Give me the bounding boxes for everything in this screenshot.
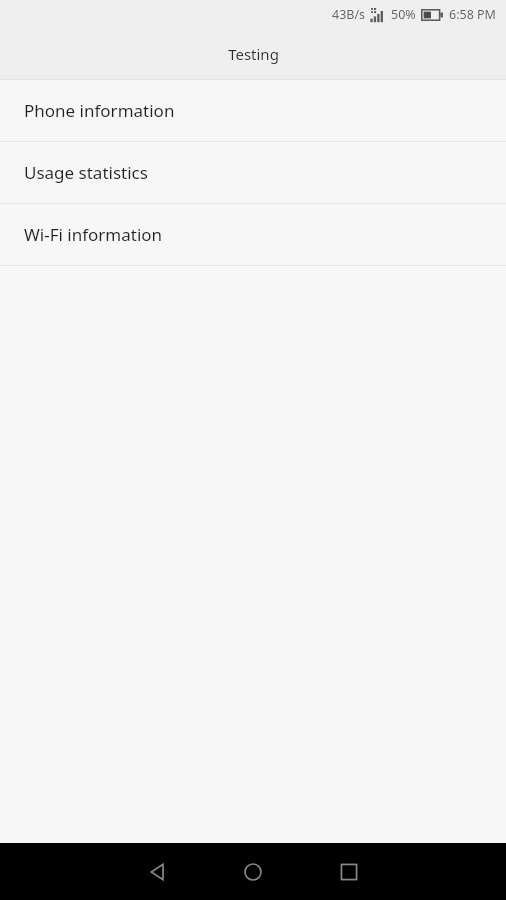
staticText: 6:58 PM [449, 6, 496, 23]
staticText: Testing [228, 44, 279, 64]
button[interactable]: Back [109, 843, 205, 900]
staticText: 50% [391, 6, 416, 23]
button[interactable]: Phone information [0, 80, 506, 141]
staticText: Phone information [24, 99, 175, 122]
button[interactable]: Wi-Fi information [0, 204, 506, 265]
staticText: Usage statistics [24, 161, 148, 184]
button[interactable]: Recent apps [301, 843, 397, 900]
staticText: Wi-Fi information [24, 223, 163, 246]
button[interactable]: Home [205, 843, 301, 900]
staticText: 43B/s [332, 6, 366, 23]
button[interactable]: Usage statistics [0, 142, 506, 203]
